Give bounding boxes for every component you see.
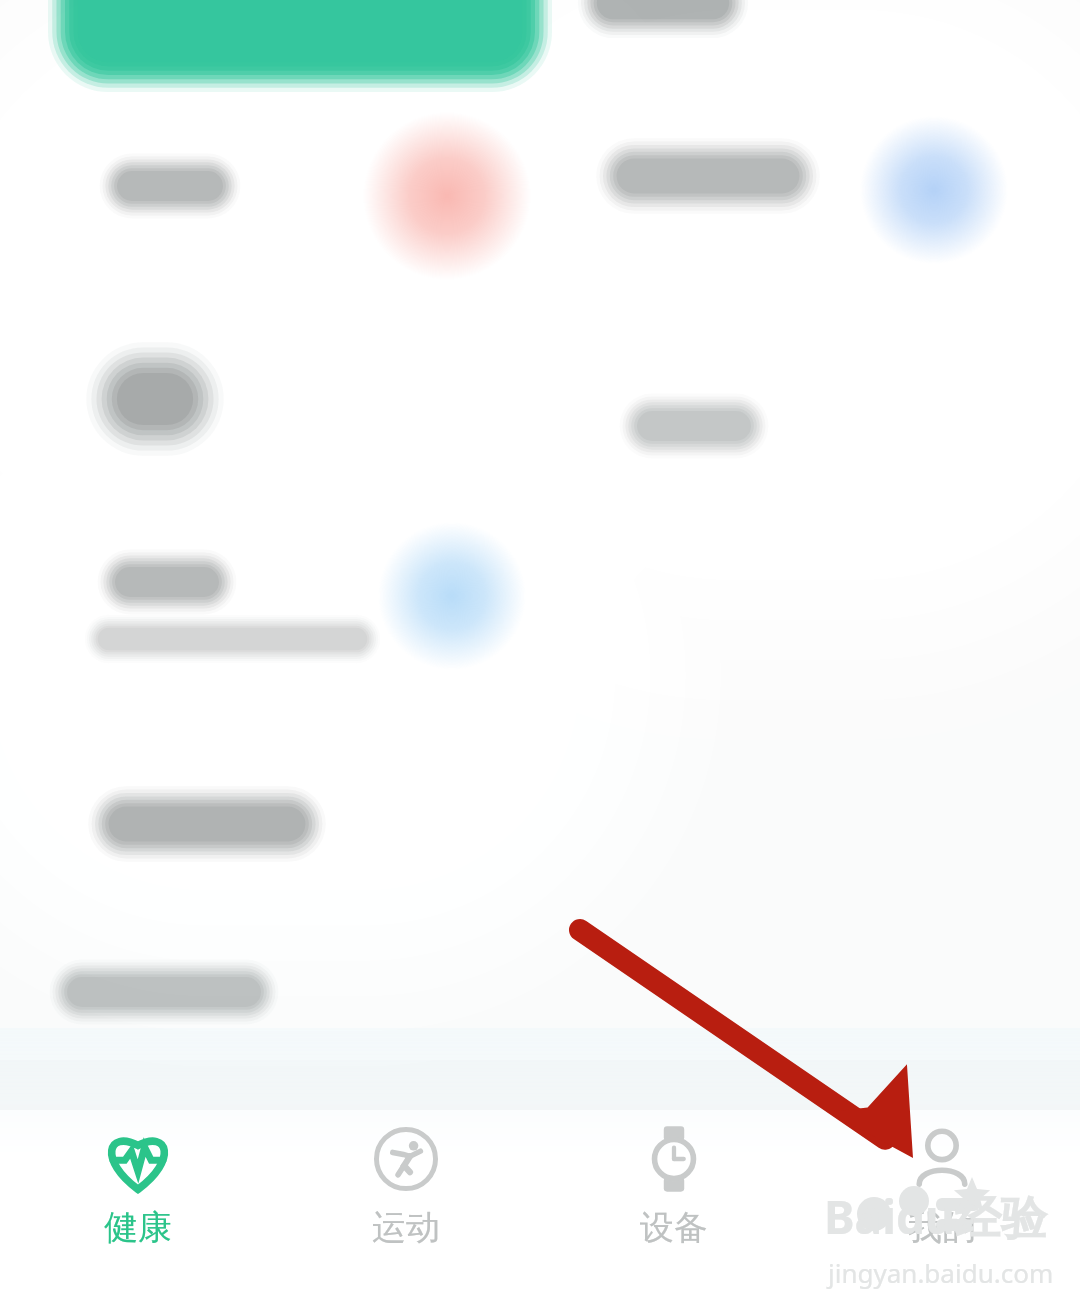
button[interactable]: Profile [812, 1120, 1072, 1255]
staticText: 健康 [104, 1206, 172, 1249]
button[interactable]: Exercise [276, 1120, 536, 1255]
staticText: 运动 [372, 1206, 440, 1249]
button[interactable]: Devices [544, 1120, 804, 1255]
staticText: 我的 [908, 1206, 976, 1249]
staticText: Baidu经验 [824, 1185, 1047, 1248]
staticText: jingyan.baidu.com [828, 1255, 1054, 1290]
button[interactable]: Health [8, 1120, 268, 1255]
staticText: 设备 [640, 1206, 708, 1249]
